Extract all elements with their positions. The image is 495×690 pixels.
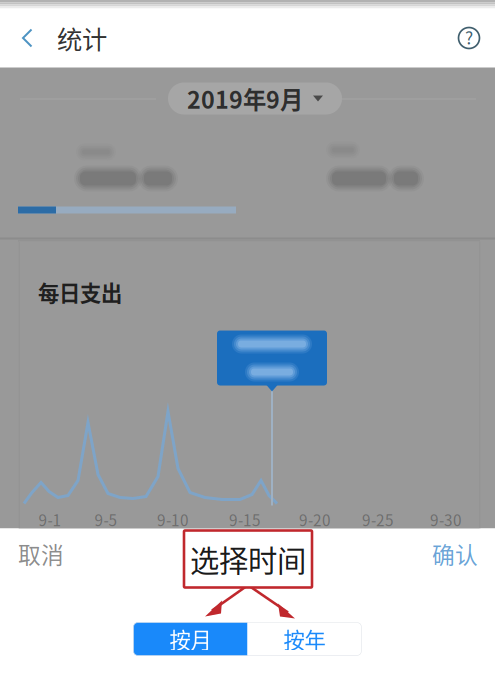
staticText: 取消 bbox=[18, 537, 64, 570]
staticText: 按年 bbox=[283, 624, 325, 654]
staticText: 9-20 bbox=[299, 508, 331, 531]
staticText: 选择时间 bbox=[190, 538, 306, 580]
staticText: 2019年9月 bbox=[187, 82, 303, 115]
button[interactable]: Help bbox=[457, 8, 495, 67]
button[interactable]: 按月 bbox=[133, 622, 247, 655]
staticText: 确认 bbox=[432, 537, 478, 570]
staticText: 统计 bbox=[57, 20, 107, 56]
button[interactable]: 确认 bbox=[432, 525, 495, 582]
button[interactable]: Back bbox=[0, 8, 57, 67]
staticText: 9-15 bbox=[229, 508, 261, 531]
staticText: 9-5 bbox=[94, 508, 117, 531]
staticText: ? bbox=[465, 24, 473, 50]
staticText: 每日支出 bbox=[38, 276, 122, 307]
staticText: 9-25 bbox=[362, 508, 394, 531]
button[interactable]: 按年 bbox=[247, 622, 361, 655]
button[interactable]: 取消 bbox=[0, 525, 64, 582]
staticText: 9-30 bbox=[430, 508, 462, 531]
staticText: 按月 bbox=[169, 624, 211, 654]
staticText: 9-1 bbox=[38, 508, 61, 531]
staticText: 9-10 bbox=[157, 508, 189, 531]
